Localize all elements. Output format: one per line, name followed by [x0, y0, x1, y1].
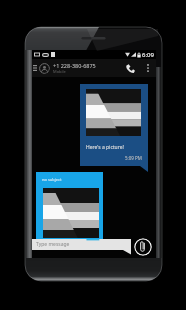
staticText: no subject	[42, 177, 62, 182]
button[interactable]: Attach	[134, 238, 152, 256]
button[interactable]: More options	[144, 59, 152, 77]
staticText: Mobile	[53, 69, 66, 74]
button[interactable]: Type message	[32, 239, 131, 250]
staticText: Here's a picture!	[86, 144, 124, 151]
staticText: 6:09	[142, 51, 154, 59]
button[interactable]: Contact avatar	[38, 62, 50, 74]
button[interactable]: Here's a picture!	[80, 84, 148, 166]
staticText: Type message	[36, 241, 70, 248]
staticText: 5:09 PM	[125, 155, 142, 161]
button[interactable]: Call	[123, 59, 137, 77]
button[interactable]: Navigate up	[32, 59, 38, 77]
staticText: +1 228-380-6875	[53, 62, 96, 69]
button[interactable]: no subject	[36, 172, 103, 246]
